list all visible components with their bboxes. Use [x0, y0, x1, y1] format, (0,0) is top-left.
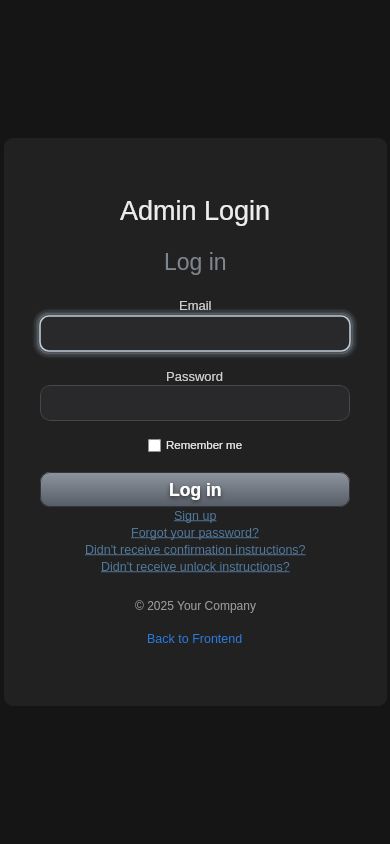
- staticText: Admin Login: [120, 196, 271, 226]
- staticText: Didn't receive unlock instructions?: [101, 560, 290, 574]
- staticText: Log in: [164, 249, 227, 275]
- staticText: Didn't receive confirmation instructions…: [85, 543, 306, 557]
- staticText: Forgot your password?: [131, 526, 259, 540]
- staticText: Sign up: [174, 509, 217, 523]
- staticText: Back to Frontend: [147, 632, 243, 646]
- staticText: Email: [179, 298, 212, 313]
- staticText: Password: [166, 369, 224, 384]
- staticText: © 2025 Your Company: [135, 599, 256, 612]
- staticText: Log in: [169, 480, 222, 500]
- staticText: Remember me: [166, 439, 243, 452]
